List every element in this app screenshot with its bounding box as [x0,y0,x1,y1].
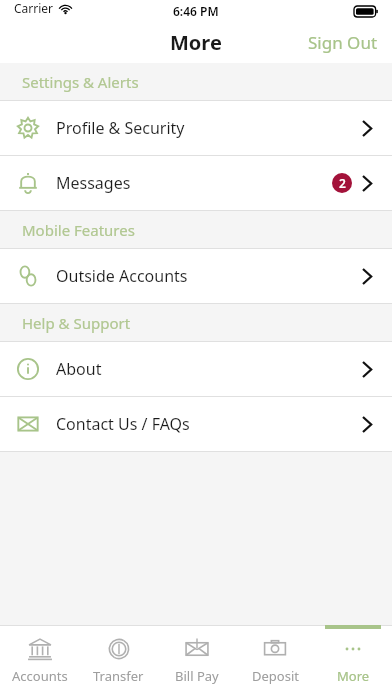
staticText: Settings & Alerts [22,72,139,92]
button[interactable]: Bill Pay [158,626,236,696]
staticText: 6:46 PM [173,3,219,19]
button[interactable]: More [314,626,392,696]
staticText: Accounts [12,667,68,685]
button[interactable]: Outside Accounts [0,249,392,303]
staticText: More [337,667,370,685]
staticText: Profile & Security [56,117,185,139]
staticText: Outside Accounts [56,265,188,287]
staticText: 2 [339,175,346,191]
staticText: More [170,29,222,56]
button[interactable]: Contact Us / FAQs [0,397,392,451]
staticText: Contact Us / FAQs [56,413,190,435]
button[interactable]: Sign Out [294,25,392,60]
button[interactable]: Accounts [0,626,79,696]
staticText: Bill Pay [175,667,219,685]
button[interactable]: Transfer [79,626,158,696]
staticText: Help & Support [22,313,131,333]
staticText: Carrier [14,0,54,16]
button[interactable]: About [0,342,392,396]
staticText: Deposit [252,667,299,685]
staticText: Mobile Features [22,220,135,240]
staticText: Transfer [93,667,144,685]
staticText: Messages [56,172,131,194]
button[interactable]: Messages [0,156,392,210]
button[interactable]: Deposit [236,626,314,696]
button[interactable]: Profile & Security [0,101,392,155]
staticText: Sign Out [308,31,378,54]
staticText: About [56,358,102,380]
